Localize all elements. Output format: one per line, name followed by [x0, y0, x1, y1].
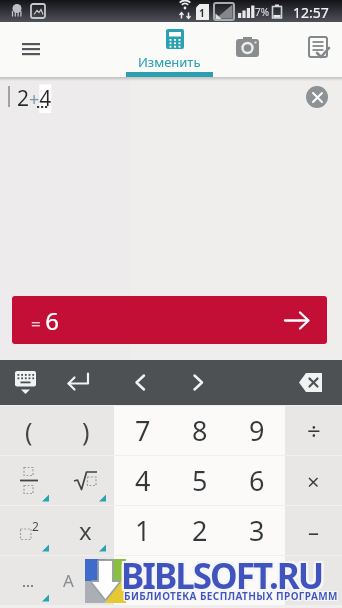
button[interactable]	[114, 556, 171, 605]
staticText: БИБЛИОТЕКА БЕСПЛАТНЫХ ПРОГРАММ	[125, 588, 339, 602]
staticText: 12:57	[293, 3, 329, 22]
staticText: A	[63, 569, 74, 592]
button[interactable]: 5	[171, 456, 228, 505]
staticText: 3	[249, 512, 265, 549]
button[interactable]: ...	[0, 556, 57, 605]
staticText: БИБЛИОТЕКА БЕСПЛАТНЫХ ПРОГРАММ	[125, 590, 339, 604]
button[interactable]: )	[57, 406, 114, 455]
button[interactable]: A	[57, 556, 114, 605]
staticText: BIBLSOFT.RU	[119, 554, 321, 602]
button[interactable]: 9	[228, 406, 285, 455]
staticText: ...	[22, 571, 35, 591]
button[interactable]	[229, 26, 265, 62]
staticText: (	[25, 414, 33, 448]
button[interactable]	[3, 360, 47, 405]
staticText: BIBLSOFT.RU	[121, 552, 323, 600]
button[interactable]: 8	[171, 406, 228, 455]
staticText: 6	[249, 462, 265, 499]
button[interactable]: 4	[114, 456, 171, 505]
button[interactable]	[171, 556, 228, 605]
button[interactable]: 3	[228, 506, 285, 555]
staticText: )	[82, 414, 90, 448]
button[interactable]	[0, 456, 57, 505]
staticText: 2+4	[17, 84, 52, 113]
button[interactable]: x	[57, 506, 114, 555]
button[interactable]	[176, 360, 220, 405]
button[interactable]	[300, 26, 336, 62]
button[interactable]: 7	[114, 406, 171, 455]
button[interactable]	[290, 360, 334, 405]
staticText: 5	[192, 462, 208, 499]
button[interactable]: 6	[228, 456, 285, 505]
staticText: 1	[135, 512, 151, 549]
staticText: 4	[135, 462, 151, 499]
staticText: BIBLSOFT.RU	[123, 552, 325, 600]
button[interactable]	[13, 33, 49, 63]
staticText: 7%	[255, 5, 270, 19]
button[interactable]: (	[0, 406, 57, 455]
staticText: = 6	[31, 304, 59, 337]
staticText: Изменить	[138, 53, 201, 71]
staticText: x	[79, 514, 92, 547]
button[interactable]	[228, 556, 285, 605]
button[interactable]	[306, 86, 328, 108]
button[interactable]: 1	[114, 506, 171, 555]
staticText: BIBLSOFT.RU	[119, 550, 321, 598]
staticText: BIBLSOFT.RU	[121, 550, 323, 598]
staticText: –	[308, 516, 320, 546]
button[interactable]	[57, 360, 101, 405]
button[interactable]: 2	[171, 506, 228, 555]
button[interactable]: –	[285, 506, 342, 555]
staticText: 7	[135, 412, 151, 449]
staticText: БИБЛИОТЕКА БЕСПЛАТНЫХ ПРОГРАММ	[123, 588, 337, 602]
staticText: BIBLSOFT.RU	[123, 554, 325, 602]
staticText: ×	[307, 466, 320, 496]
staticText: БИБЛИОТЕКА БЕСПЛАТНЫХ ПРОГРАММ	[123, 590, 337, 604]
staticText: BIBLSOFT.RU	[123, 550, 325, 598]
staticText: 2	[192, 512, 208, 549]
button[interactable]	[57, 456, 114, 505]
button[interactable]	[285, 556, 342, 605]
staticText: БИБЛИОТЕКА БЕСПЛАТНЫХ ПРОГРАММ	[124, 589, 338, 603]
staticText: 2	[32, 518, 39, 534]
button[interactable]: Изменить	[123, 22, 216, 77]
staticText: 1	[199, 6, 205, 20]
button[interactable]: 2	[0, 506, 57, 555]
button[interactable]: = 6	[12, 296, 327, 344]
button[interactable]	[118, 360, 162, 405]
staticText: 8	[192, 412, 208, 449]
staticText: 9	[249, 412, 265, 449]
staticText: BIBLSOFT.RU	[121, 554, 323, 602]
staticText: BIBLSOFT.RU	[119, 552, 321, 600]
button[interactable]: ÷	[285, 406, 342, 455]
button[interactable]: ×	[285, 456, 342, 505]
staticText: ÷	[307, 414, 321, 447]
